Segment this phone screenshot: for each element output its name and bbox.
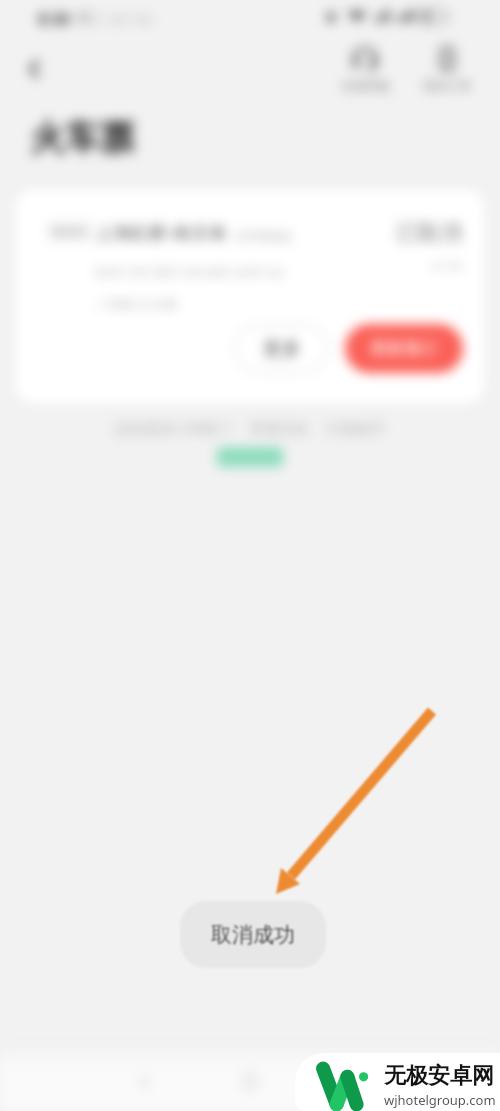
staticText: 无极安卓网	[384, 1062, 494, 1090]
staticText: 没有更多订单啦了 查看历史 行程助手	[114, 418, 386, 438]
staticText: 上海虹桥-南京南	[95, 220, 227, 245]
staticText: wjhotelgroup.com	[384, 1091, 496, 1109]
staticText: 更多	[263, 337, 301, 361]
staticText: 重新预订	[370, 338, 438, 359]
button[interactable]: Back	[20, 54, 50, 84]
button[interactable]: 我的订单	[419, 46, 475, 93]
staticText: 8:30	[38, 8, 70, 30]
staticText: G7006次	[236, 226, 293, 245]
button[interactable]: 在线客服	[337, 46, 393, 93]
button[interactable]: 更多	[234, 324, 329, 373]
button[interactable]: 取消成功	[180, 901, 326, 968]
button[interactable]: 重新预订	[345, 324, 463, 373]
staticText: 周二	[76, 10, 104, 28]
staticText: 取消成功	[211, 922, 295, 948]
staticText: 火车票	[30, 116, 135, 160]
staticText: 已取消	[396, 219, 462, 247]
staticText: 待出行	[52, 224, 88, 239]
staticText: 二等座 王小明	[95, 295, 177, 313]
staticText: 我的订单	[423, 78, 471, 93]
staticText: 在线客服	[341, 78, 389, 93]
button[interactable]: Recents	[338, 1064, 374, 1100]
